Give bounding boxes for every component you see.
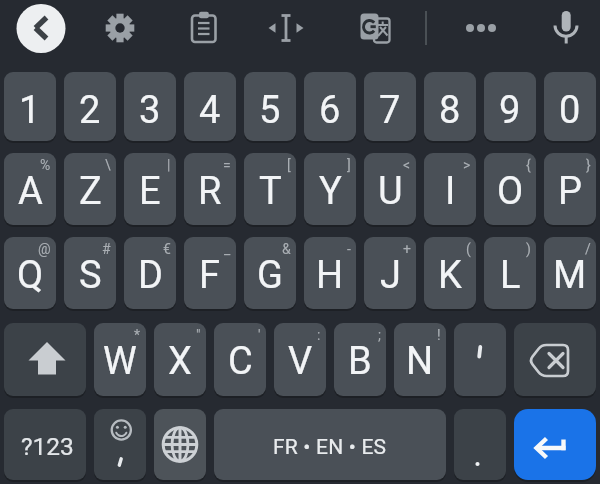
button[interactable]: P	[544, 153, 596, 225]
staticText: }	[586, 157, 591, 173]
staticText: P	[558, 169, 582, 214]
button[interactable]: I	[424, 153, 476, 225]
staticText: 7	[379, 88, 401, 133]
staticText: M	[553, 253, 587, 298]
staticText: @	[38, 241, 51, 257]
staticText: 8	[439, 88, 461, 133]
staticText: Q	[17, 253, 44, 298]
button[interactable]: W	[94, 323, 146, 396]
button[interactable]: O	[484, 153, 536, 225]
staticText: >	[463, 157, 471, 173]
button[interactable]: S	[64, 237, 116, 309]
button[interactable]: 3	[124, 72, 176, 141]
button[interactable]: M	[544, 237, 596, 309]
staticText: )	[526, 241, 531, 257]
button[interactable]: K	[424, 237, 476, 309]
button[interactable]	[454, 323, 506, 396]
staticText: _	[224, 241, 231, 257]
button[interactable]: X	[154, 323, 206, 396]
button[interactable]	[4, 323, 86, 396]
staticText: #	[102, 241, 111, 257]
button[interactable]: E	[124, 153, 176, 225]
staticText: 0	[559, 88, 581, 133]
staticText: 2	[79, 88, 101, 133]
button[interactable]: 9	[484, 72, 536, 141]
button[interactable]: A	[4, 153, 56, 225]
staticText: +	[403, 241, 411, 257]
staticText: I	[445, 169, 456, 214]
button[interactable]: 6	[304, 72, 356, 141]
staticText: G	[257, 253, 283, 298]
staticText: S	[79, 253, 102, 298]
staticText: L	[500, 253, 521, 298]
staticText: !	[437, 327, 441, 343]
button[interactable]: C	[214, 323, 266, 396]
button[interactable]: N	[394, 323, 446, 396]
staticText: -	[347, 241, 351, 257]
staticText: C	[228, 339, 253, 384]
button[interactable]: B	[334, 323, 386, 396]
button[interactable]	[154, 409, 206, 480]
staticText: 5	[259, 88, 281, 133]
staticText: ?123	[21, 432, 74, 461]
staticText: |	[167, 157, 171, 173]
staticText: J	[380, 253, 401, 298]
staticText: "	[196, 327, 201, 343]
staticText: U	[378, 169, 403, 214]
button[interactable]	[94, 409, 146, 480]
button[interactable]: ?123	[4, 409, 86, 480]
staticText: =	[223, 157, 231, 173]
staticText: 9	[499, 88, 521, 133]
button[interactable]: 5	[244, 72, 296, 141]
staticText: {	[526, 157, 531, 173]
button[interactable]: G	[244, 237, 296, 309]
button[interactable]: U	[364, 153, 416, 225]
staticText: 4	[199, 88, 221, 133]
button[interactable]: 0	[544, 72, 596, 141]
button[interactable]: L	[484, 237, 536, 309]
staticText: (	[466, 241, 471, 257]
staticText: :	[317, 327, 321, 343]
staticText: F	[199, 253, 221, 298]
button[interactable]: T	[244, 153, 296, 225]
button[interactable]: D	[124, 237, 176, 309]
button[interactable]: R	[184, 153, 236, 225]
staticText: ;	[378, 327, 381, 343]
staticText: N	[406, 339, 434, 384]
button[interactable]: Y	[304, 153, 356, 225]
button[interactable]: 8	[424, 72, 476, 141]
button[interactable]	[0, 0, 600, 484]
button[interactable]	[514, 409, 596, 480]
button[interactable]: 7	[364, 72, 416, 141]
staticText: A	[18, 169, 43, 214]
staticText: R	[198, 169, 222, 214]
button[interactable]	[514, 323, 596, 396]
button[interactable]: J	[364, 237, 416, 309]
button[interactable]: 1	[4, 72, 56, 141]
staticText: 6	[319, 88, 341, 133]
button[interactable]: F	[184, 237, 236, 309]
staticText: €	[163, 241, 171, 257]
button[interactable]: Q	[4, 237, 56, 309]
staticText: W	[103, 339, 137, 384]
staticText: *	[134, 327, 141, 343]
staticText: X	[168, 339, 192, 384]
button[interactable]: V	[274, 323, 326, 396]
button[interactable]: H	[304, 237, 356, 309]
staticText: O	[497, 169, 524, 214]
staticText: [	[287, 157, 291, 173]
staticText: E	[139, 169, 161, 214]
button[interactable]: FR • EN • ES	[214, 409, 446, 480]
button[interactable]: 2	[64, 72, 116, 141]
button[interactable]	[454, 409, 506, 480]
staticText: %	[40, 157, 51, 173]
button[interactable]: Z	[64, 153, 116, 225]
staticText: 1	[19, 88, 41, 133]
staticText: V	[288, 339, 313, 384]
staticText: T	[259, 169, 282, 214]
staticText: B	[348, 339, 372, 384]
staticText: \	[105, 157, 111, 173]
staticText: ]	[347, 157, 351, 173]
staticText: <	[403, 157, 411, 173]
button[interactable]: 4	[184, 72, 236, 141]
